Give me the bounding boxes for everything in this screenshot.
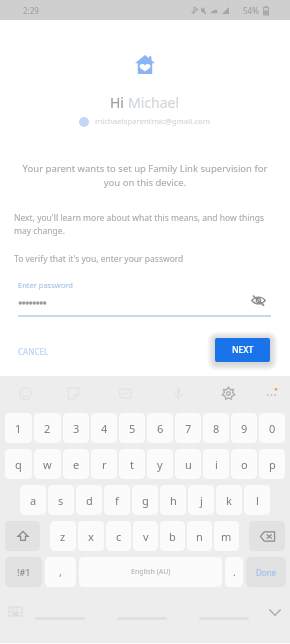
button[interactable]: j bbox=[188, 485, 214, 515]
button[interactable]: n bbox=[187, 521, 212, 551]
staticText: c bbox=[116, 529, 122, 544]
staticText: Your parent wants to set up Family Link … bbox=[18, 162, 272, 189]
staticText: m bbox=[221, 529, 232, 544]
staticText: p bbox=[269, 457, 276, 472]
staticText: d bbox=[86, 493, 93, 508]
button[interactable]: 1 bbox=[5, 413, 32, 443]
staticText: Done bbox=[256, 567, 277, 578]
button[interactable]: . bbox=[225, 557, 243, 587]
button[interactable]: a bbox=[20, 485, 46, 515]
staticText: 8 bbox=[213, 421, 220, 436]
button[interactable]: e bbox=[63, 449, 89, 479]
staticText: a bbox=[30, 493, 37, 508]
staticText: y bbox=[157, 457, 163, 472]
button[interactable]: 5 bbox=[119, 413, 145, 443]
button[interactable]: Show password bbox=[249, 291, 267, 309]
button[interactable]: w bbox=[34, 449, 61, 479]
button[interactable]: 9 bbox=[231, 413, 257, 443]
button[interactable]: CANCEL bbox=[12, 341, 55, 362]
staticText: !#1 bbox=[17, 566, 31, 578]
button[interactable]: 2 bbox=[34, 413, 61, 443]
button[interactable]: 4 bbox=[91, 413, 117, 443]
button[interactable]: s bbox=[48, 485, 74, 515]
staticText: , bbox=[59, 565, 62, 579]
staticText: f bbox=[115, 493, 119, 508]
button[interactable]: More options bbox=[259, 381, 283, 405]
staticText: n bbox=[196, 529, 203, 544]
button[interactable]: y bbox=[147, 449, 173, 479]
staticText: 4 bbox=[101, 421, 108, 436]
button[interactable]: Shift bbox=[5, 521, 40, 551]
staticText: z bbox=[60, 529, 66, 544]
staticText: 2 bbox=[44, 421, 51, 436]
staticText: 1 bbox=[15, 421, 22, 436]
staticText: Next, you'll learn more about what this … bbox=[14, 212, 276, 237]
staticText: 0 bbox=[269, 421, 276, 436]
staticText: . bbox=[233, 565, 236, 579]
button[interactable]: l bbox=[244, 485, 270, 515]
staticText: i bbox=[215, 457, 218, 472]
button[interactable]: , bbox=[45, 557, 76, 587]
staticText: o bbox=[241, 457, 248, 472]
staticText: j bbox=[200, 493, 203, 508]
staticText: k bbox=[226, 493, 232, 508]
button[interactable]: Keyboard settings bbox=[216, 381, 240, 405]
button[interactable]: v bbox=[133, 521, 158, 551]
button[interactable]: m bbox=[214, 521, 239, 551]
button[interactable]: o bbox=[231, 449, 257, 479]
staticText: x bbox=[88, 529, 94, 544]
button[interactable]: r bbox=[91, 449, 117, 479]
staticText: b bbox=[169, 529, 176, 544]
staticText: 9 bbox=[241, 421, 248, 436]
staticText: s bbox=[58, 493, 64, 508]
staticText: 2:29 bbox=[23, 5, 39, 16]
staticText: Hi bbox=[110, 93, 128, 112]
staticText: l bbox=[256, 493, 259, 508]
button[interactable]: i bbox=[203, 449, 229, 479]
button[interactable]: NEXT bbox=[215, 338, 270, 362]
staticText: g bbox=[142, 493, 149, 508]
button[interactable]: 3 bbox=[63, 413, 89, 443]
staticText: michaelsparentmic@gmail.com bbox=[95, 116, 211, 127]
staticText: 7 bbox=[185, 421, 192, 436]
button[interactable]: 8 bbox=[203, 413, 229, 443]
button[interactable]: g bbox=[132, 485, 158, 515]
button[interactable]: d bbox=[76, 485, 102, 515]
staticText: e bbox=[73, 457, 80, 472]
button[interactable]: Backspace bbox=[249, 521, 285, 551]
button[interactable]: Hide keyboard bbox=[265, 605, 285, 619]
staticText: u bbox=[185, 457, 192, 472]
staticText: 5 bbox=[129, 421, 136, 436]
button[interactable]: !#1 bbox=[5, 557, 42, 587]
button[interactable]: k bbox=[216, 485, 242, 515]
staticText: w bbox=[43, 457, 52, 472]
button[interactable]: z bbox=[50, 521, 76, 551]
button[interactable]: h bbox=[160, 485, 186, 515]
staticText: English (AU) bbox=[131, 567, 171, 577]
staticText: 6 bbox=[157, 421, 164, 436]
button[interactable]: c bbox=[106, 521, 131, 551]
button[interactable]: q bbox=[5, 449, 32, 479]
staticText: NEXT bbox=[232, 344, 254, 356]
staticText: q bbox=[15, 457, 22, 472]
button[interactable]: Change keyboard layout bbox=[7, 604, 24, 618]
button[interactable]: 7 bbox=[175, 413, 201, 443]
button[interactable]: 6 bbox=[147, 413, 173, 443]
staticText: t bbox=[130, 457, 134, 472]
staticText: 54% bbox=[243, 5, 259, 16]
button[interactable]: f bbox=[104, 485, 130, 515]
button[interactable]: u bbox=[175, 449, 201, 479]
button[interactable]: p bbox=[259, 449, 285, 479]
button[interactable]: Done bbox=[246, 557, 286, 587]
button[interactable]: b bbox=[160, 521, 185, 551]
button[interactable]: x bbox=[78, 521, 104, 551]
button[interactable]: 0 bbox=[259, 413, 285, 443]
button[interactable]: t bbox=[119, 449, 145, 479]
staticText: Enter password bbox=[18, 280, 73, 290]
staticText: CANCEL bbox=[18, 346, 49, 357]
button[interactable]: English (AU) bbox=[79, 557, 222, 587]
